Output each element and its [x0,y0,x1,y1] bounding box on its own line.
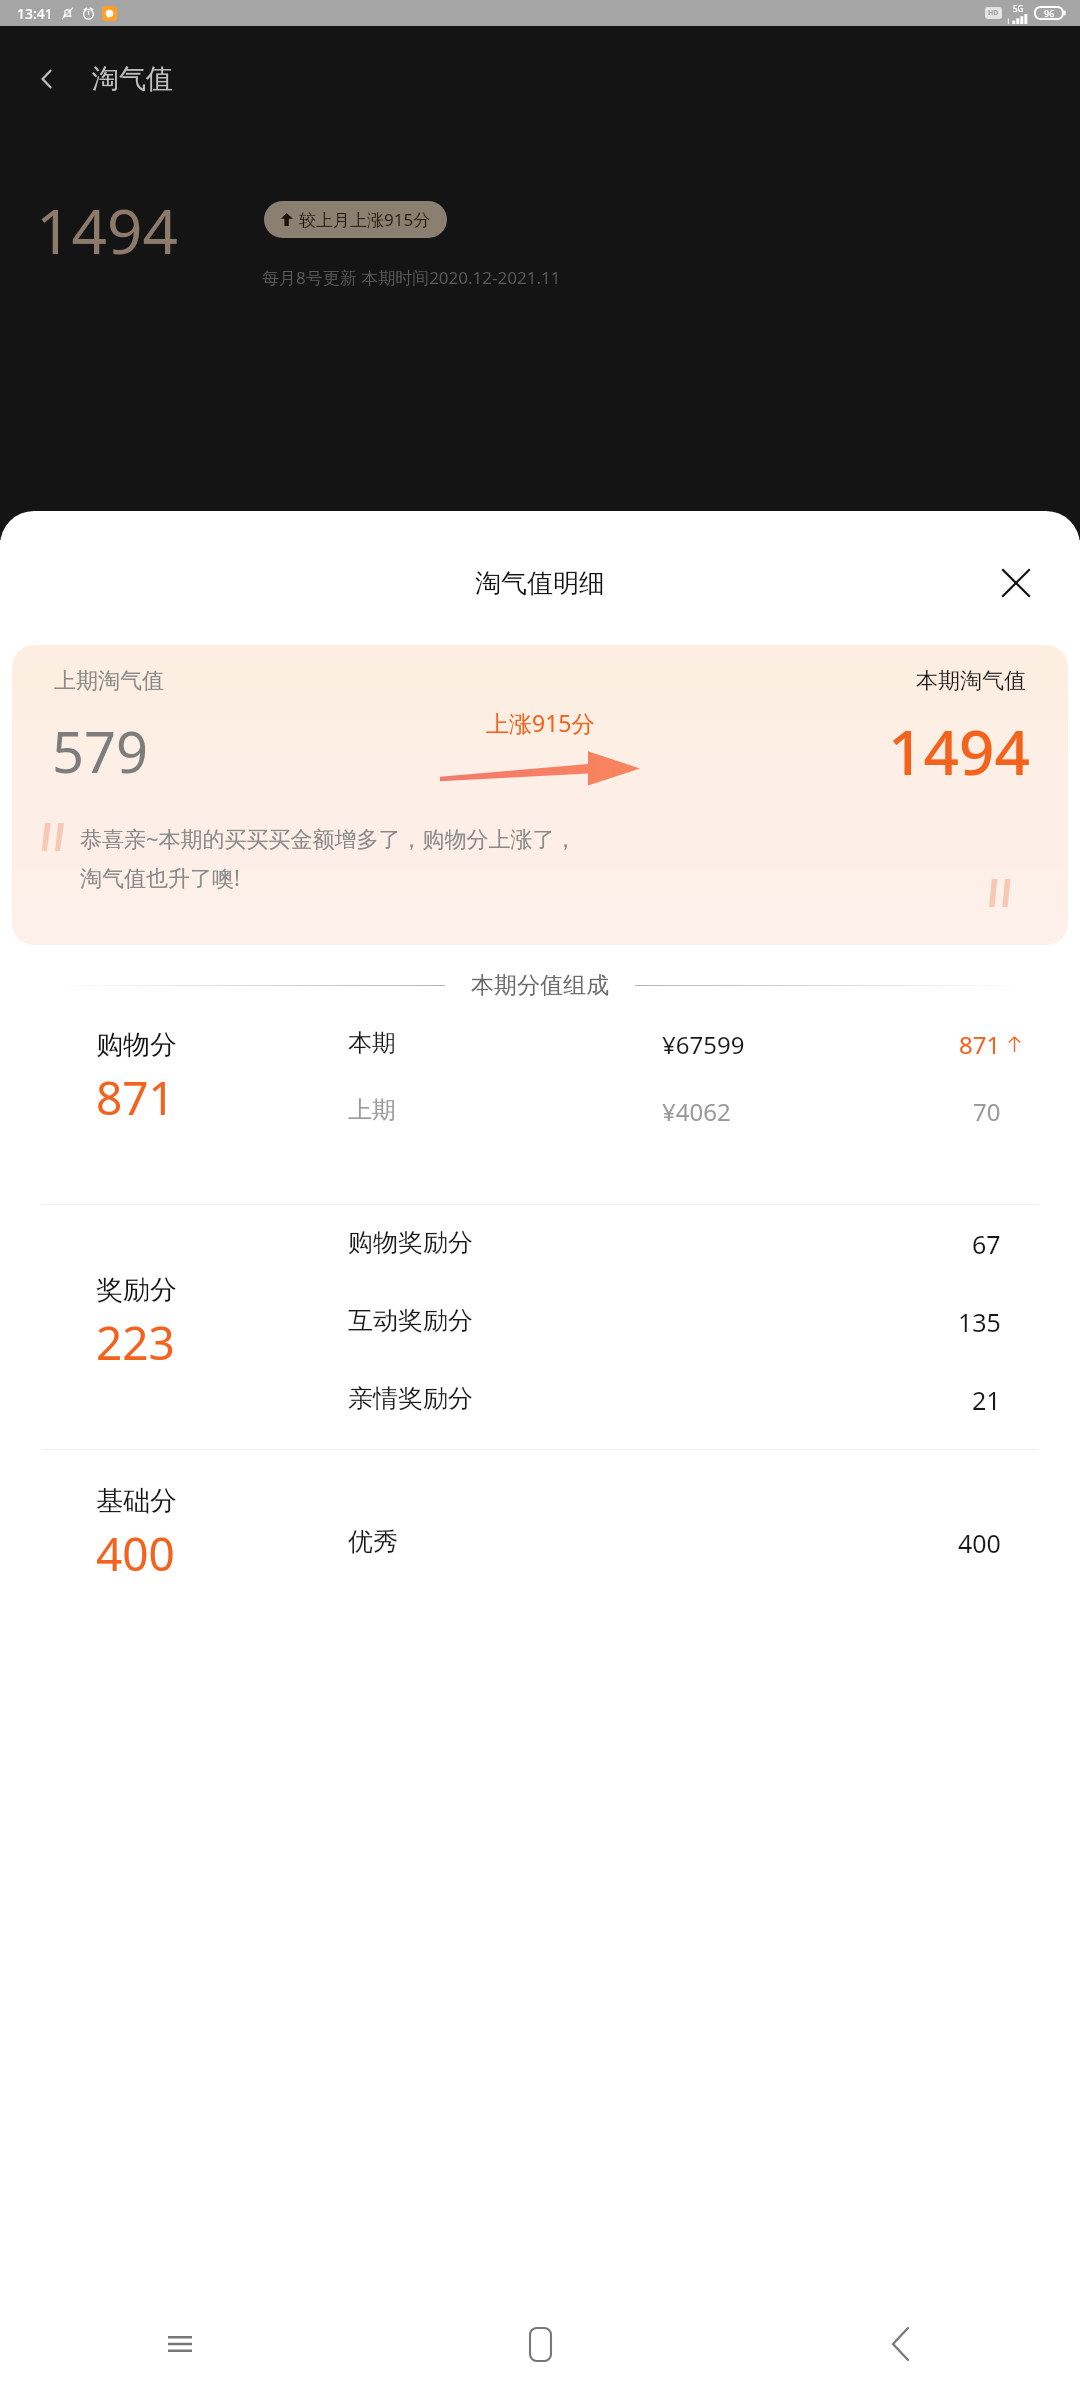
staticText: 上涨915分 [486,707,595,738]
staticText: 1494 [36,188,178,272]
button[interactable]: Recent apps [0,2288,360,2400]
staticText: 上期 [348,1095,396,1125]
staticText: 购物奖励分 [348,1227,473,1258]
staticText: 96 [1044,7,1055,19]
staticText: 400 [958,1526,1001,1560]
staticText: 恭喜亲~本期的买买买金额增多了，购物分上涨了， 淘气值也升了噢! [80,823,577,892]
staticText: 本期淘气值 [916,667,1026,695]
staticText: 21 [972,1383,1001,1417]
button[interactable]: 奖励分 [0,1205,1080,1449]
staticText: 购物分 [96,1028,177,1062]
staticText: 本期分值组成 [471,971,609,1000]
staticText: 871 [96,1066,175,1129]
staticText: ¥4062 [662,1095,731,1128]
staticText: 优秀 [348,1526,398,1557]
staticText: 135 [958,1305,1001,1339]
staticText: 223 [96,1311,175,1374]
staticText: 本期 [348,1028,396,1058]
staticText: HD [988,8,999,18]
staticText: 579 [52,713,149,789]
button[interactable]: Back [24,56,70,102]
button[interactable]: Back [720,2288,1080,2400]
staticText: 871 [959,1028,1001,1061]
button[interactable]: Close [990,557,1042,609]
staticText: 较上月上涨915分 [299,208,431,231]
staticText: 400 [96,1522,175,1585]
button[interactable]: Home [360,2288,720,2400]
staticText: 淘气值 [92,62,173,96]
staticText: 亲情奖励分 [348,1383,473,1414]
staticText: 淘气值明细 [475,567,605,600]
button[interactable]: 基础分 [0,1450,1080,1640]
staticText: 奖励分 [96,1273,177,1307]
staticText: 1494 [888,709,1030,793]
staticText: 13:41 [17,4,53,23]
button[interactable]: 较上月上涨915分 [264,201,447,238]
staticText: 每月8号更新 本期时间2020.12-2021.11 [262,266,561,289]
staticText: 基础分 [96,1484,177,1518]
staticText: ¥67599 [662,1028,745,1061]
staticText: 上期淘气值 [54,667,164,695]
staticText: 70 [973,1095,1001,1128]
staticText: 67 [972,1227,1001,1261]
staticText: 互动奖励分 [348,1305,473,1336]
button[interactable]: 购物分 [0,1014,1080,1204]
staticText: 5G [1013,3,1024,14]
